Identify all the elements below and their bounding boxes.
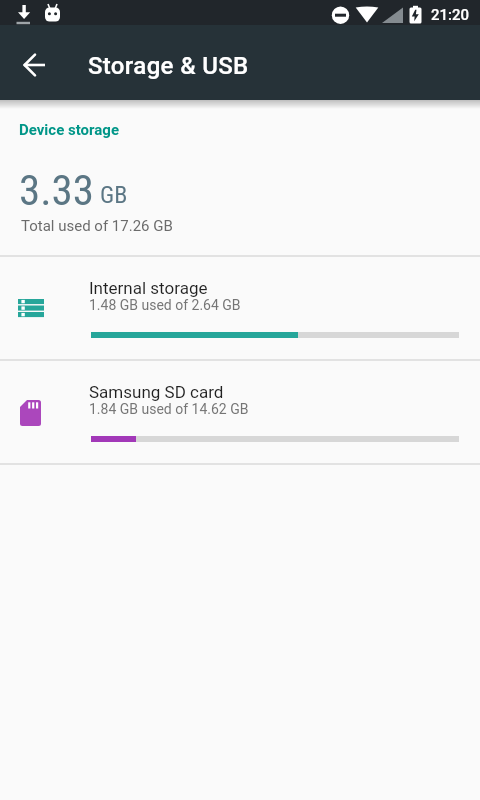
staticText: Total used of 17.26 GB xyxy=(21,217,173,235)
staticText: 1.48 GB used of 2.64 GB xyxy=(89,297,241,313)
staticText: Device storage xyxy=(19,121,120,139)
staticText: Internal storage xyxy=(89,278,208,298)
staticText: Storage & USB xyxy=(88,52,249,80)
staticText: 21:20 xyxy=(431,6,470,24)
button[interactable]: Samsung SD card xyxy=(0,360,480,463)
button[interactable]: Internal storage xyxy=(0,256,480,359)
staticText: GB xyxy=(100,181,128,209)
button[interactable] xyxy=(11,39,59,87)
staticText: Samsung SD card xyxy=(89,382,224,402)
staticText: 1.84 GB used of 14.62 GB xyxy=(89,401,249,417)
staticText: 3.33 xyxy=(19,165,95,215)
